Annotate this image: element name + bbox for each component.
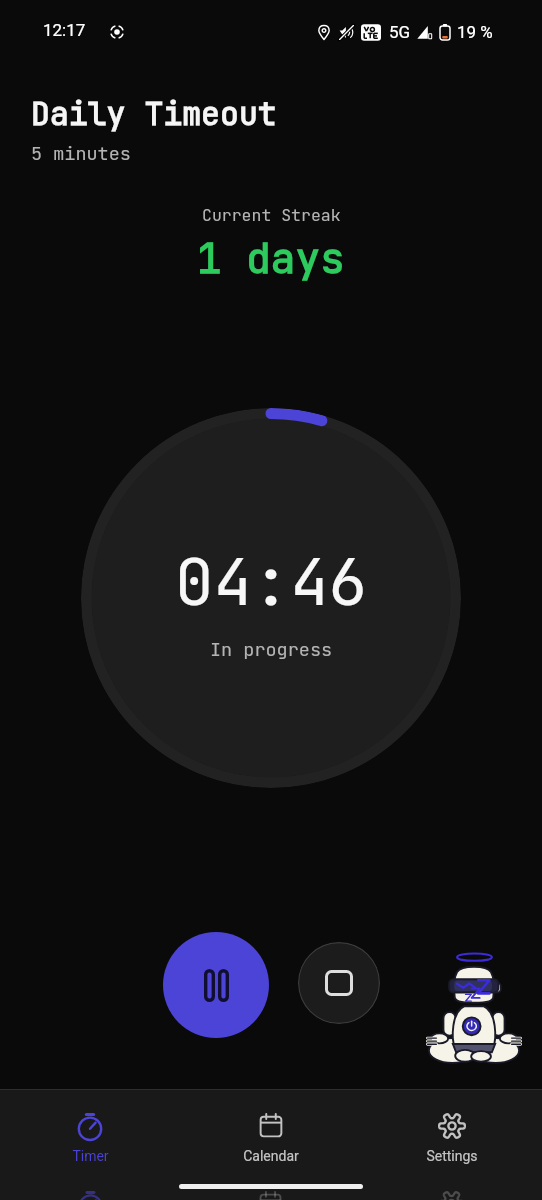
- button[interactable]: Timer: [0, 1106, 180, 1170]
- button[interactable]: Settings: [361, 1106, 542, 1170]
- staticText: Settings: [426, 1148, 478, 1164]
- staticText: 5 minutes: [31, 141, 131, 165]
- staticText: Timer: [72, 1148, 109, 1164]
- button[interactable]: Calendar: [180, 1106, 361, 1170]
- staticText: 19 %: [457, 22, 493, 42]
- staticText: 5G: [389, 22, 411, 42]
- button[interactable]: Stop: [298, 942, 380, 1024]
- staticText: 1 days: [197, 231, 345, 285]
- staticText: 04:46: [175, 540, 367, 624]
- staticText: Current Streak: [202, 204, 341, 226]
- staticText: Calendar: [243, 1148, 299, 1164]
- staticText: Daily Timeout: [31, 93, 277, 135]
- button[interactable]: Timer 04:46, in progress: [81, 408, 461, 788]
- staticText: In progress: [210, 637, 333, 661]
- staticText: 12:17: [43, 20, 86, 40]
- button[interactable]: Pause: [163, 932, 269, 1038]
